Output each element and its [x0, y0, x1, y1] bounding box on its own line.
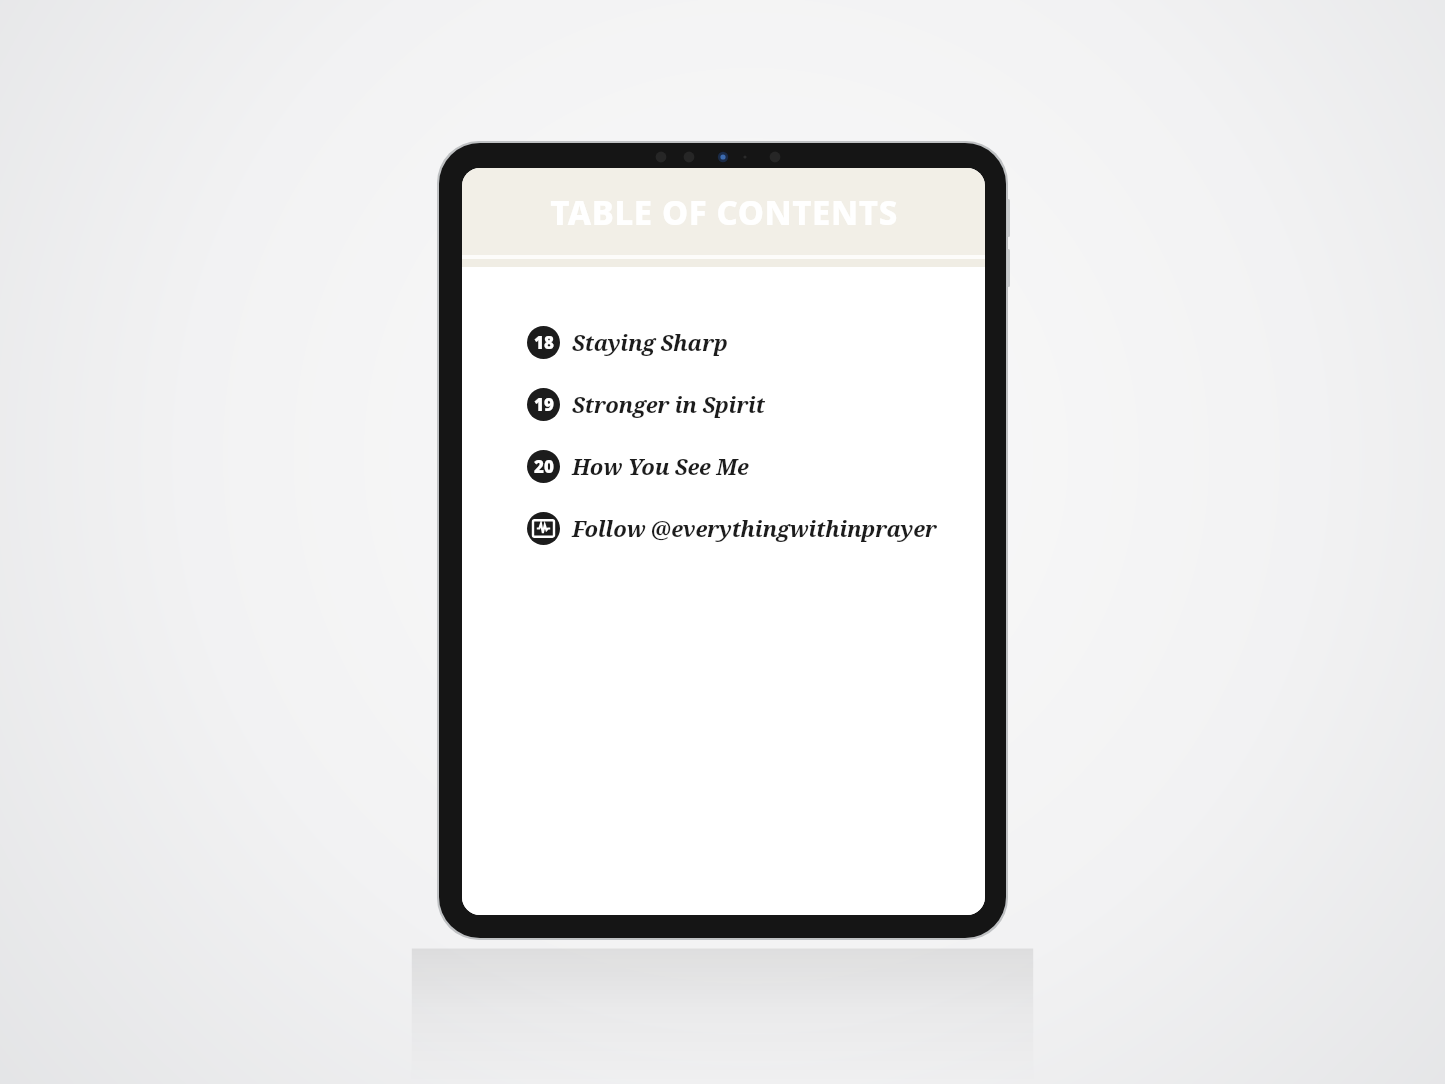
staticText: How You See Me: [572, 451, 749, 481]
other: Instagram: [527, 512, 560, 545]
button[interactable]: 19: [462, 373, 985, 435]
staticText: 18: [534, 331, 554, 354]
staticText: Follow @everythingwithinprayer: [572, 513, 937, 543]
staticText: TABLE OF CONTENTS: [550, 190, 898, 235]
staticText: 19: [534, 393, 554, 416]
staticText: 20: [534, 455, 554, 478]
button[interactable]: 18: [462, 311, 985, 373]
button[interactable]: 20: [462, 435, 985, 497]
button[interactable]: Instagram: [462, 497, 985, 559]
staticText: Staying Sharp: [572, 327, 728, 357]
staticText: Stronger in Spirit: [572, 389, 765, 419]
